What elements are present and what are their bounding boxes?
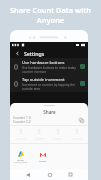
button[interactable]: Back [13, 49, 21, 57]
button[interactable]: Back [23, 170, 32, 179]
button[interactable]: Contact [67, 128, 86, 141]
button[interactable]: Contact [12, 128, 30, 141]
staticText: Drive [17, 158, 24, 161]
button[interactable]: Contact [30, 128, 48, 141]
staticText: Share [43, 109, 56, 115]
staticText: Increment or counter by tapping the outs… [22, 83, 78, 91]
button[interactable]: Toggle Tap outside increment [80, 81, 85, 86]
button[interactable]: Toggle Use hardware buttons [80, 64, 85, 69]
staticText: Contact [16, 137, 26, 141]
button[interactable]: Gmail [35, 151, 50, 162]
staticText: Use hardware buttons to make today count… [22, 66, 78, 74]
button[interactable]: Contact [48, 128, 67, 141]
staticText: Settings [24, 50, 45, 57]
staticText: Share Count Data with Anyone [0, 5, 101, 25]
button[interactable]: Drive [13, 150, 28, 164]
staticText: Counter 1.0 [13, 116, 31, 120]
button[interactable]: Use hardware buttons [10, 58, 88, 75]
staticText: Contact [72, 137, 82, 141]
staticText: Contact [53, 137, 63, 141]
staticText: Save to Drive [14, 161, 27, 164]
button[interactable]: Recents [66, 170, 75, 179]
staticText: Use hardware buttons [22, 60, 65, 65]
staticText: Tap outside increment [22, 77, 65, 82]
staticText: Contact [34, 137, 44, 141]
button[interactable]: Copy [78, 117, 85, 124]
button[interactable]: Home [45, 170, 54, 179]
staticText: Gmail [39, 159, 46, 162]
staticText: Counter 2.0 [13, 120, 31, 124]
button[interactable]: Tap outside increment [10, 75, 88, 92]
